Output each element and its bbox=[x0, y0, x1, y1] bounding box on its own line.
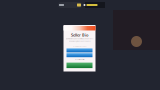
staticText: in one place, wherever you are. bbox=[68, 40, 90, 42]
staticText: Sign in to manage your listings and orde… bbox=[65, 38, 93, 40]
staticText: or continue with bbox=[74, 59, 84, 60]
button[interactable]: Create an account bbox=[63, 45, 95, 47]
staticText: Create an account bbox=[73, 45, 86, 47]
button[interactable] bbox=[66, 63, 92, 68]
staticText: Seller Bio bbox=[71, 32, 88, 38]
button[interactable] bbox=[66, 53, 92, 57]
button[interactable]: Address bar bbox=[58, 2, 82, 8]
button[interactable]: Tab bbox=[85, 2, 105, 8]
button[interactable] bbox=[66, 48, 92, 52]
